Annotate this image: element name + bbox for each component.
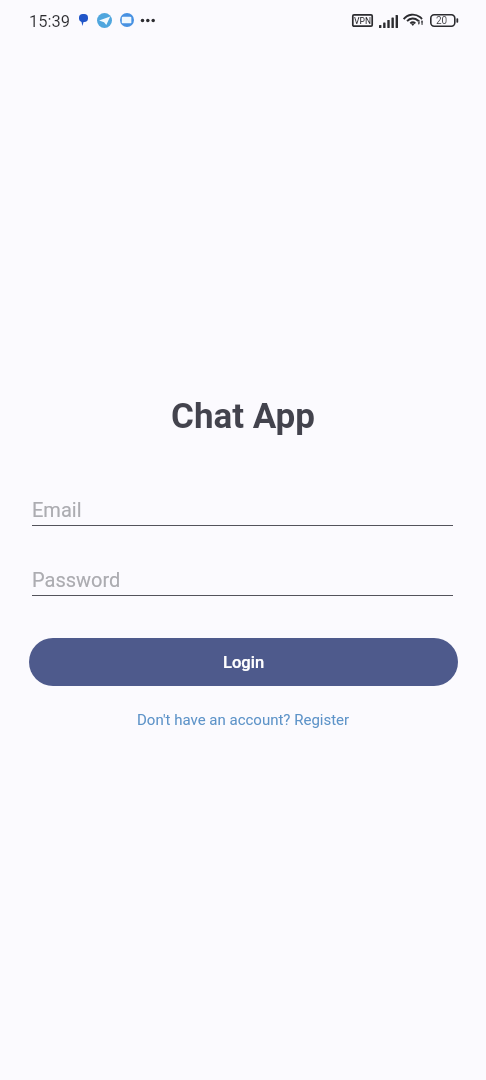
staticText: Don't have an account? Register — [137, 711, 350, 729]
other: Wi-Fi connected — [402, 13, 423, 27]
staticText: VPN — [354, 16, 372, 26]
button[interactable]: Login — [29, 638, 458, 686]
staticText: 15:39 — [29, 12, 71, 31]
other: Telegram notification — [97, 13, 112, 28]
other: VPN active — [352, 14, 373, 27]
button[interactable]: Email — [32, 498, 453, 533]
other: Chat notification — [120, 13, 134, 27]
other: Battery 20 percent — [430, 14, 459, 27]
other: Message notification — [79, 14, 88, 26]
other: Mobile signal full — [379, 15, 398, 28]
staticText: Login — [223, 653, 265, 672]
staticText: Email — [32, 498, 82, 521]
staticText: Chat App — [171, 396, 315, 437]
staticText: Password — [32, 568, 121, 591]
staticText: 20 — [436, 15, 448, 27]
button[interactable]: Don't have an account? Register — [0, 702, 486, 738]
button[interactable]: Password — [32, 568, 453, 603]
other: More notifications — [140, 17, 156, 24]
